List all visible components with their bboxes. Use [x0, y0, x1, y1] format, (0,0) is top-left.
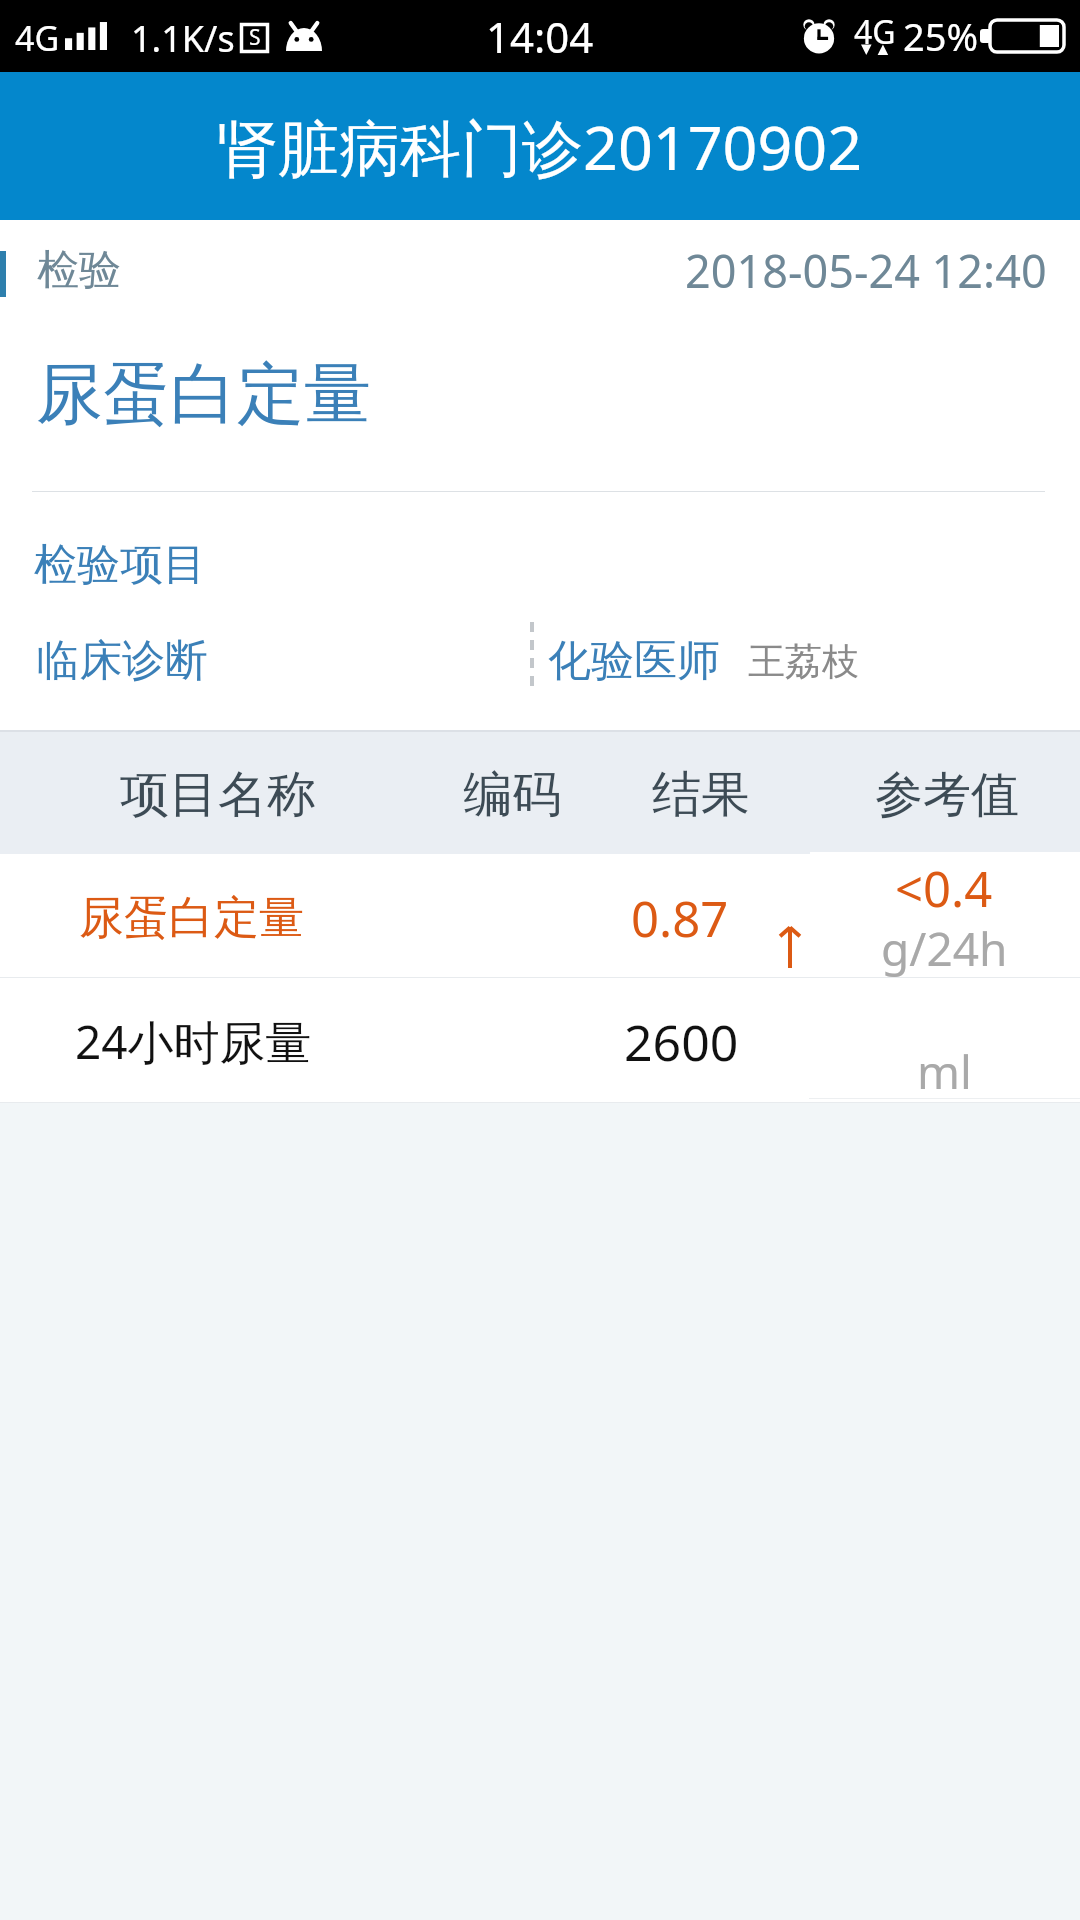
- staticText: 检验项目: [34, 538, 206, 592]
- staticText: 项目名称: [120, 764, 316, 826]
- staticText: 结果: [652, 764, 750, 826]
- staticText: 化验医师: [548, 634, 720, 688]
- staticText: 肾脏病科门诊20170902: [217, 105, 863, 188]
- staticText: S: [249, 23, 261, 52]
- staticText: 4G: [854, 10, 896, 54]
- staticText: 25%: [903, 10, 979, 62]
- staticText: <0.4: [895, 855, 993, 922]
- staticText: 1.1K/s: [131, 14, 235, 63]
- other: 偏高: [779, 925, 801, 968]
- other: 省电模式: [240, 23, 269, 53]
- staticText: 尿蛋白定量: [79, 890, 304, 947]
- staticText: 王荔枝: [748, 638, 859, 685]
- staticText: 参考值: [875, 765, 1019, 825]
- button[interactable]: 肾脏病科门诊20170902: [0, 72, 1080, 220]
- button[interactable]: 尿蛋白定量: [0, 854, 1080, 977]
- staticText: 编码: [463, 764, 561, 826]
- staticText: 24小时尿量: [75, 1010, 312, 1073]
- staticText: 2018-05-24 12:40: [685, 240, 1047, 301]
- button[interactable]: 24小时尿量: [0, 978, 1080, 1102]
- staticText: ml: [917, 1040, 972, 1103]
- other: 系统通知: [286, 21, 322, 51]
- staticText: 尿蛋白定量: [36, 352, 371, 436]
- staticText: 临床诊断: [36, 634, 208, 688]
- staticText: 2600: [624, 1008, 739, 1076]
- staticText: g/24h: [881, 917, 1008, 980]
- other: 闹钟: [801, 18, 837, 52]
- staticText: 0.87: [631, 885, 729, 952]
- other: 4G 数据: [854, 8, 900, 64]
- staticText: 14:04: [486, 8, 594, 65]
- other: 信号强度: [65, 22, 107, 50]
- button[interactable]: 检验项目: [0, 520, 1080, 608]
- button[interactable]: 临床诊断: [0, 610, 1080, 702]
- button[interactable]: 检验: [0, 220, 1080, 500]
- other: 电量 25%: [980, 20, 1064, 52]
- staticText: 检验: [37, 244, 121, 297]
- staticText: 4G: [15, 15, 60, 61]
